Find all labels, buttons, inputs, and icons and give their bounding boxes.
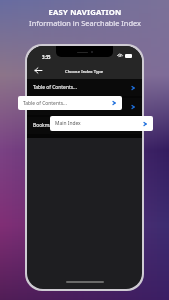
staticText: Bookmarks <box>33 122 59 129</box>
staticText: Information in Searchable Index <box>29 18 141 28</box>
button[interactable]: Bookmarks <box>27 117 142 134</box>
staticText: Main Index <box>55 120 81 127</box>
staticText: 3:35 <box>42 54 51 60</box>
staticText: Choose Index Type <box>65 68 104 74</box>
staticText: Table of Contents... <box>33 84 77 91</box>
staticText: Table of Contents... <box>33 103 77 110</box>
button[interactable]: Main Index <box>50 116 153 131</box>
button[interactable]: Table of Contents... <box>18 96 122 110</box>
button[interactable]: Back <box>32 64 45 77</box>
button[interactable]: Table of Contents... <box>27 98 142 115</box>
staticText: Table of Contents... <box>23 100 67 107</box>
staticText: EASY NAVIGATION <box>48 7 122 17</box>
button[interactable]: Table of Contents... <box>27 79 142 96</box>
